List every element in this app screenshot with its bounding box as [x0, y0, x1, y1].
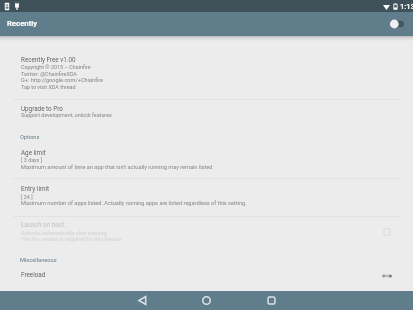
staticText: G+: http://google.com/+Chainfire — [21, 77, 104, 84]
staticText: Upgrade to Pro — [21, 105, 63, 112]
staticText: Launch on boot — [21, 221, 65, 228]
staticText: Options — [20, 134, 40, 141]
button[interactable] — [0, 100, 413, 126]
staticText: Support development, unlock features — [21, 112, 112, 118]
staticText: Entry limit — [21, 185, 50, 192]
staticText: Miscellaneous — [20, 257, 57, 264]
staticText: Twitter: @ChainfireXDA — [21, 71, 77, 77]
staticText: Copyright © 2015 – Chainfire — [21, 64, 91, 70]
staticText: 1:13 — [400, 2, 413, 11]
button[interactable] — [0, 217, 413, 246]
staticText: [ 24 ] — [21, 194, 33, 200]
staticText: Age limit — [21, 149, 46, 156]
staticText: Maximum amount of time an app that isn't… — [21, 164, 213, 171]
button[interactable] — [0, 144, 413, 178]
button[interactable]: Home — [174, 291, 239, 310]
staticText: Maximum number of apps listed. Actually … — [21, 200, 247, 207]
staticText: [ 3 days ] — [21, 157, 43, 163]
button[interactable]: Launch on boot checkbox — [379, 224, 395, 240]
button[interactable] — [0, 267, 413, 288]
button[interactable]: Freeload switch — [377, 268, 397, 284]
button[interactable]: Back — [109, 291, 174, 310]
staticText: The Pro version is required for this fea… — [21, 236, 122, 242]
staticText: Tap to visit XDA thread — [21, 84, 76, 90]
button[interactable]: Toggle Recently service — [390, 17, 406, 31]
staticText: Activate automatically after booting — [21, 230, 107, 236]
button[interactable] — [0, 48, 413, 98]
staticText: Recently — [7, 19, 38, 28]
staticText: Recently Free v1.00 — [21, 56, 76, 63]
button[interactable]: Recent apps — [239, 291, 304, 310]
button[interactable] — [0, 180, 413, 215]
staticText: Freeload — [21, 271, 46, 278]
